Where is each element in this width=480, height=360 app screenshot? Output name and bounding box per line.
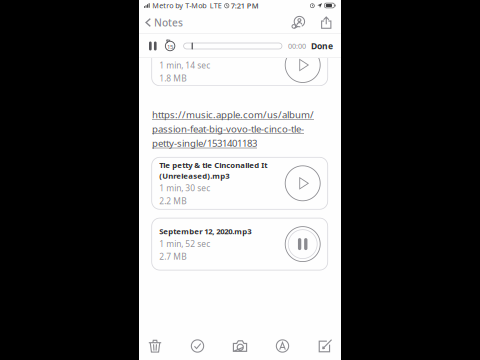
button[interactable]: Camera [227,333,253,359]
button[interactable]: Share [313,11,341,34]
staticText: 7:21 PM [231,0,259,11]
staticText: LTE [210,1,222,10]
button[interactable]: Notes [139,11,191,34]
button[interactable]: Checklist [184,333,210,359]
staticText: 1 min, 52 sec [159,238,210,249]
staticText: Tle petty & tle Cinconalled It (Unreleas… [159,160,267,181]
staticText: Metro by T-Mob [152,1,206,10]
staticText: 00:00 [288,41,306,51]
button[interactable]: Done [311,34,333,57]
button[interactable]: New Note [312,333,338,359]
button[interactable]: Tle petty & tle Cinconalled It (Unreleas… [152,157,328,209]
staticText: September 12, 2020.mp3 [159,226,251,236]
staticText: petty-single/1531401183 [152,137,257,150]
staticText: https://music.apple.com/us/album/ [152,108,314,121]
staticText: 1 min, 30 sec [159,182,210,194]
button[interactable]: September 12, 2020.mp3 [152,218,328,270]
staticText: Notes [154,16,183,29]
button[interactable]: Skip back 15 seconds [165,34,176,57]
staticText: 1 min, 14 sec [159,59,210,71]
staticText: 1.8 MB [159,72,186,84]
button[interactable]: Pause [147,34,159,57]
button[interactable]: https://music.apple.com/us/album/ [152,108,314,150]
staticText: Done [311,40,333,52]
staticText: 15 [167,43,173,51]
staticText: passion-feat-big-vovo-tle-cinco-tle- [152,122,304,135]
button[interactable]: Markup [269,333,295,359]
button[interactable]: Collaborate [285,11,313,34]
button[interactable]: Delete [142,333,168,359]
staticText: 2.2 MB [159,195,186,207]
staticText: Untitled recording.m4a [159,47,248,58]
staticText: 2.7 MB [159,251,186,262]
